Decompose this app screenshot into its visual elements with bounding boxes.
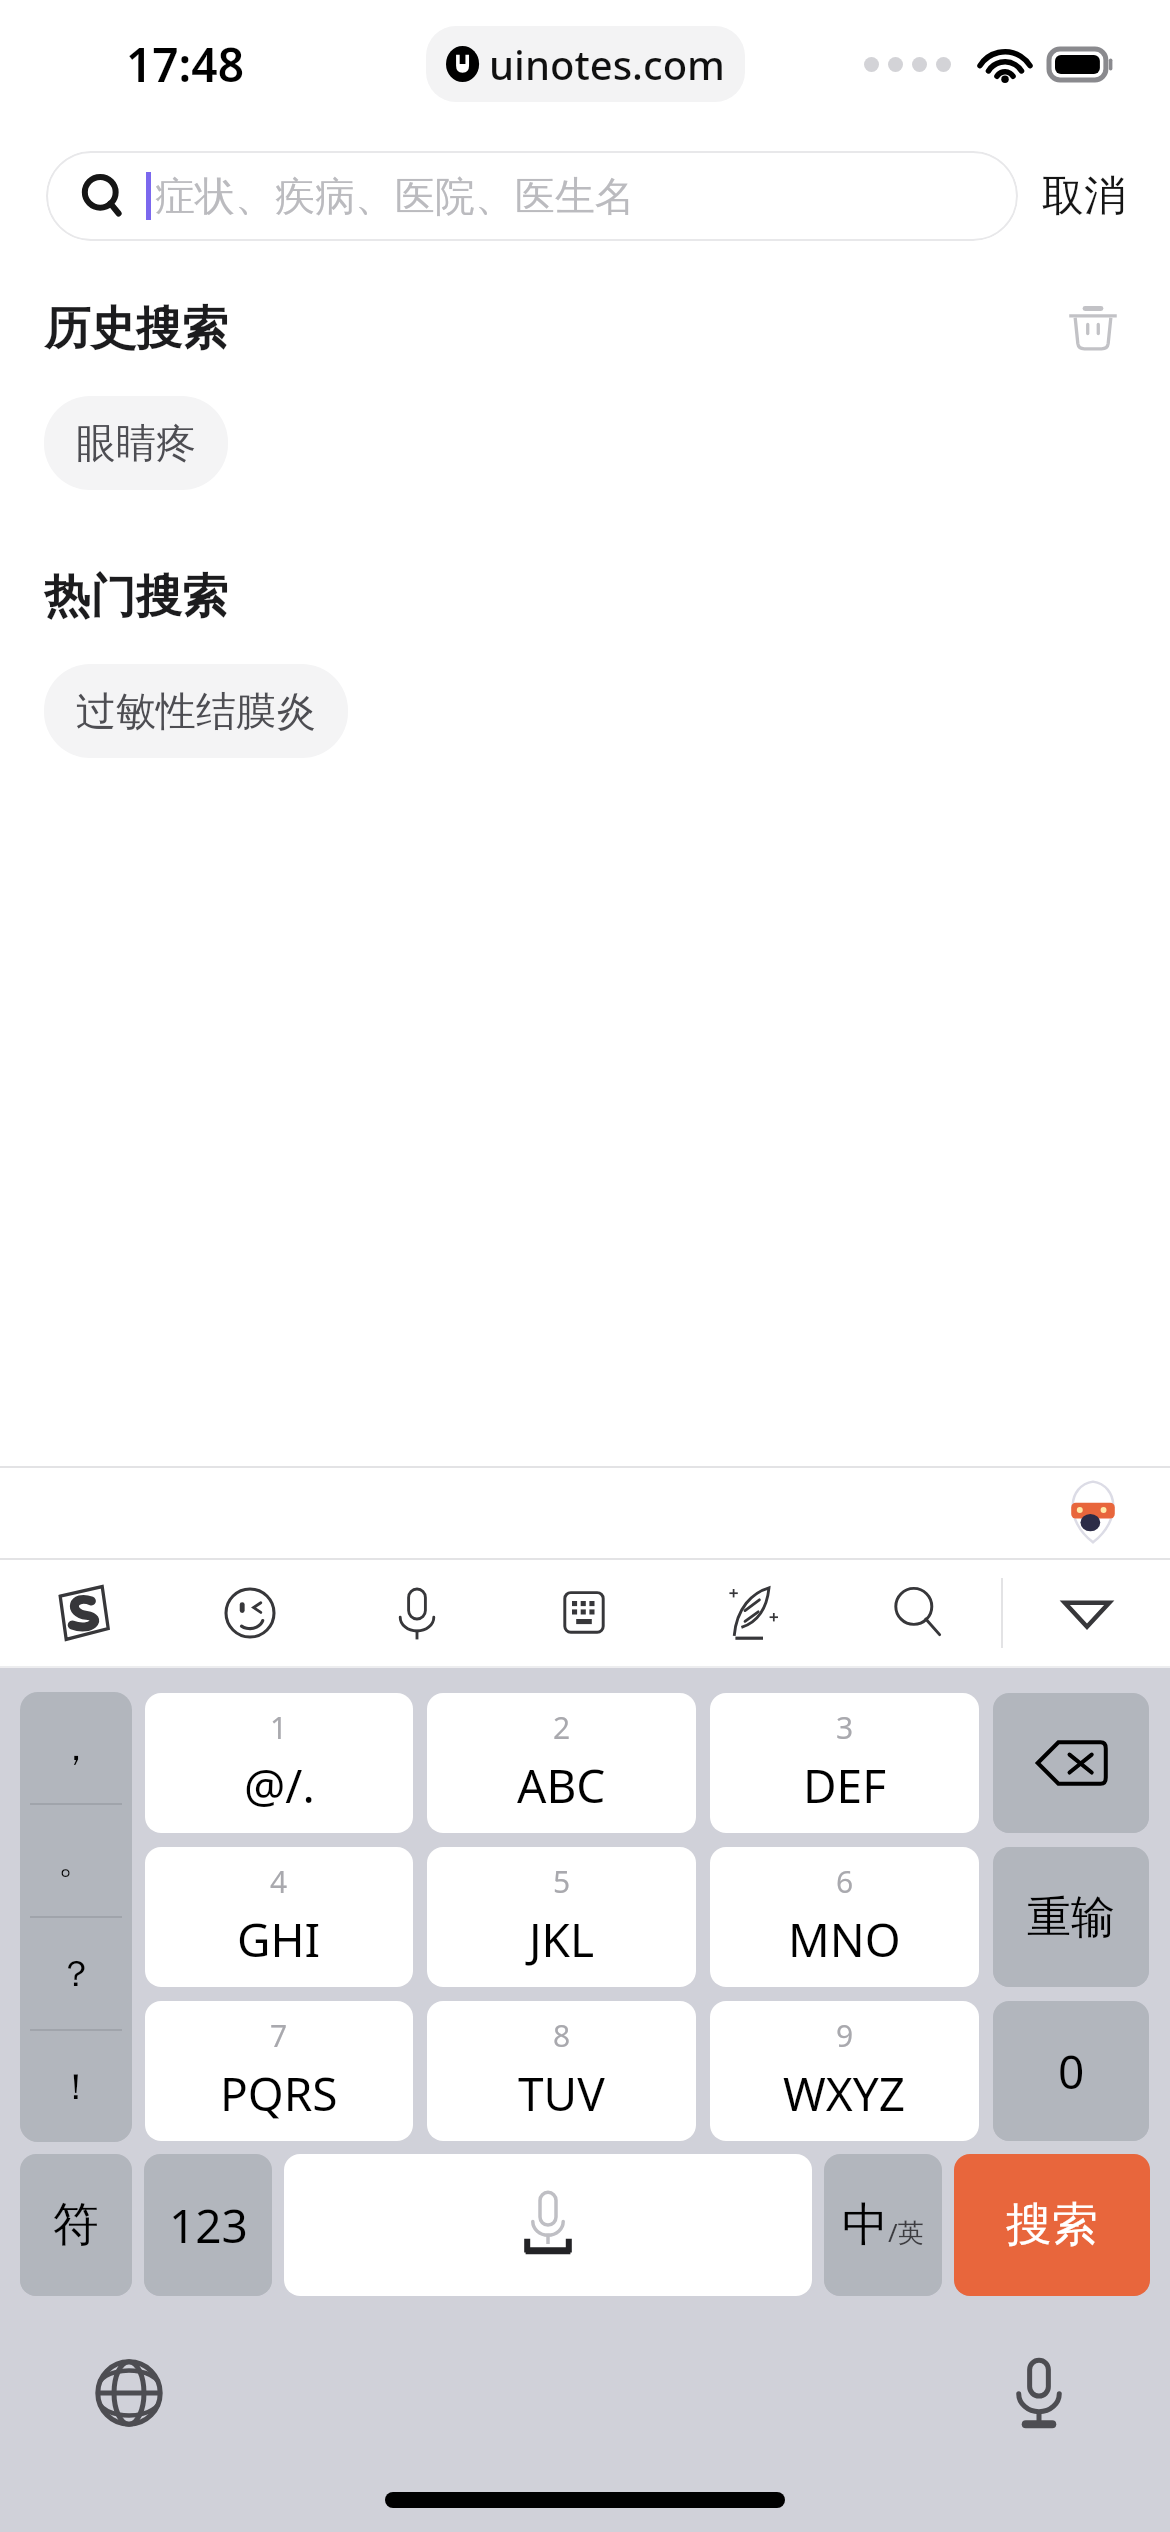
staticText: 6	[836, 1861, 854, 1902]
staticText: @/.	[244, 1754, 315, 1817]
staticText: 过敏性结膜炎	[76, 686, 316, 736]
staticText: 7	[270, 2015, 288, 2056]
button[interactable]: Space / voice	[284, 2154, 812, 2296]
staticText: 4	[270, 1861, 288, 1902]
staticText: 8	[553, 2015, 571, 2056]
staticText: 历史搜索	[44, 300, 228, 358]
staticText: ！	[58, 2064, 94, 2109]
button[interactable]: 过敏性结膜炎	[44, 664, 348, 758]
staticText: ，	[58, 1725, 94, 1770]
button[interactable]: 8	[427, 2001, 696, 2141]
staticText: TUV	[518, 2062, 605, 2125]
button[interactable]: Sogou input	[0, 1558, 166, 1668]
button[interactable]: Voice input	[333, 1558, 500, 1668]
staticText: 0	[1058, 2040, 1085, 2103]
button[interactable]: 2	[427, 1693, 696, 1833]
button[interactable]: 3	[710, 1693, 979, 1833]
button[interactable]: Handwriting	[667, 1558, 834, 1668]
staticText: 取消	[1042, 170, 1126, 223]
button[interactable]: Sogou assistant	[1060, 1479, 1126, 1545]
staticText: 9	[836, 2015, 854, 2056]
staticText: 2	[553, 1707, 571, 1748]
button[interactable]: 取消	[1018, 154, 1132, 239]
staticText: ABC	[517, 1754, 606, 1817]
button[interactable]: Backspace	[993, 1693, 1149, 1833]
staticText: 搜索	[1006, 2196, 1098, 2254]
staticText: /英	[888, 2214, 924, 2250]
staticText: 符	[53, 2196, 99, 2254]
button[interactable]: 搜索	[954, 2154, 1150, 2296]
button[interactable]: Clear search history	[1060, 296, 1126, 362]
staticText: 症状、疾病、医院、医生名	[155, 171, 635, 221]
button[interactable]: Search	[834, 1558, 1001, 1668]
button[interactable]: Emoji	[166, 1558, 333, 1668]
button[interactable]: 7	[145, 2001, 413, 2141]
staticText: 。	[58, 1838, 94, 1883]
button[interactable]: 症状、疾病、医院、医生名	[46, 151, 1018, 241]
staticText: 1	[270, 1707, 288, 1748]
staticText: PQRS	[220, 2062, 338, 2125]
button[interactable]: ，	[20, 1692, 132, 2142]
staticText: 重输	[1027, 1890, 1115, 1945]
button[interactable]: 眼睛疼	[44, 396, 228, 490]
button[interactable]: 0	[993, 2001, 1149, 2141]
staticText: 17:48	[126, 33, 244, 96]
staticText: 5	[553, 1861, 571, 1902]
staticText: DEF	[803, 1754, 887, 1817]
button[interactable]: 123	[144, 2154, 272, 2296]
button[interactable]: 中	[824, 2154, 942, 2296]
staticText: JKL	[529, 1908, 595, 1971]
staticText: MNO	[788, 1908, 901, 1971]
button[interactable]: 4	[145, 1847, 413, 1987]
staticText: 热门搜索	[44, 568, 228, 626]
staticText: 眼睛疼	[76, 418, 196, 468]
staticText: uinotes.com	[489, 37, 725, 91]
staticText: GHI	[237, 1908, 321, 1971]
button[interactable]: Hide keyboard	[1003, 1558, 1170, 1668]
button[interactable]: 符	[20, 2154, 132, 2296]
button[interactable]: 5	[427, 1847, 696, 1987]
staticText: 3	[836, 1707, 854, 1748]
button[interactable]: 9	[710, 2001, 979, 2141]
staticText: ？	[58, 1951, 94, 1996]
staticText: 中	[842, 2196, 888, 2254]
button[interactable]: 6	[710, 1847, 979, 1987]
button[interactable]: Voice input	[1000, 2354, 1078, 2432]
staticText: 123	[169, 2194, 248, 2257]
button[interactable]: 重输	[993, 1847, 1149, 1987]
button[interactable]: Keyboard layout	[500, 1558, 667, 1668]
button[interactable]: Switch language	[90, 2354, 168, 2432]
button[interactable]: 1	[145, 1693, 413, 1833]
staticText: WXYZ	[783, 2062, 906, 2125]
